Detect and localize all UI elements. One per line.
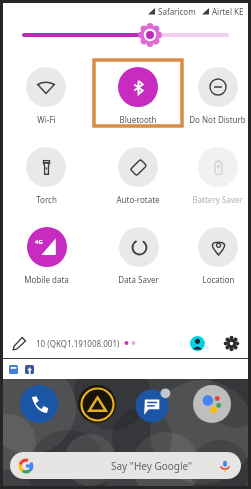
staticText: 4G — [35, 238, 43, 246]
button[interactable]: Messages — [135, 385, 173, 423]
staticText: Torch — [36, 194, 57, 205]
staticText: Auto-rotate — [116, 194, 160, 205]
button[interactable]: User — [187, 333, 207, 353]
button[interactable]: Phone — [20, 385, 58, 423]
button[interactable]: Settings — [221, 333, 241, 353]
staticText: Data Saver — [118, 274, 159, 285]
button[interactable]: Battery Saver — [184, 140, 251, 206]
button[interactable]: Torch — [0, 140, 92, 206]
button[interactable]: Wi-Fi — [0, 60, 92, 126]
button[interactable]: Do Not Disturb — [184, 60, 251, 126]
button[interactable]: Edit tiles — [10, 334, 28, 352]
staticText: Battery Saver — [192, 194, 243, 205]
button[interactable]: Auto-rotate — [92, 140, 184, 206]
button[interactable]: App — [78, 385, 116, 423]
staticText: Airtel KE — [212, 6, 244, 17]
button[interactable]: Bluetooth — [92, 60, 184, 126]
staticText: Say "Hey Google" — [111, 459, 193, 473]
button[interactable]: 4G — [0, 220, 92, 286]
staticText: Bluetooth — [119, 114, 157, 125]
other: Voice search — [219, 460, 231, 472]
staticText: Safaricom — [158, 6, 196, 17]
staticText: Location — [202, 274, 235, 285]
button[interactable]: Data Saver — [92, 220, 184, 286]
button[interactable]: Location — [184, 220, 251, 286]
staticText: Wi-Fi — [37, 114, 56, 125]
button[interactable]: Assistant — [193, 385, 231, 423]
button[interactable]: Say "Hey Google" — [10, 452, 241, 479]
button[interactable] — [0, 359, 251, 379]
button[interactable] — [0, 22, 251, 48]
staticText: 10 (QKQ1.191008.001) — [36, 338, 120, 349]
staticText: Do Not Disturb — [189, 114, 246, 125]
staticText: Mobile data — [24, 274, 69, 285]
